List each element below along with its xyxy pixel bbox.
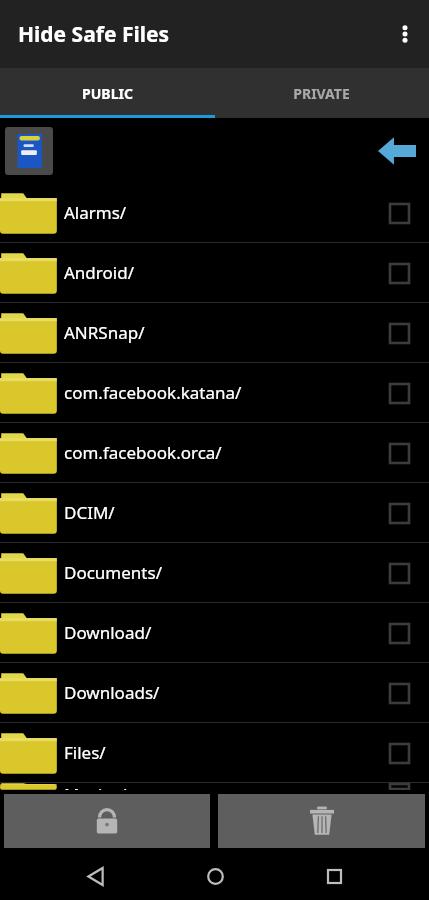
button[interactable]: PUBLIC [0, 68, 214, 118]
button[interactable]: Back [373, 127, 421, 175]
button[interactable]: Select Downloads/ [375, 669, 423, 717]
staticText: PUBLIC [82, 84, 133, 103]
button[interactable]: Documents/ [0, 543, 429, 602]
button[interactable]: Select DCIM/ [375, 489, 423, 537]
staticText: ANRSnap/ [64, 321, 375, 344]
button[interactable]: Delete selected [218, 794, 425, 848]
button[interactable]: Lock selected [4, 794, 210, 848]
staticText: Hide Safe Files [18, 20, 170, 49]
button[interactable]: Home [191, 852, 239, 900]
staticText: com.facebook.orca/ [64, 441, 375, 464]
button[interactable]: Select Alarms/ [375, 189, 423, 237]
button[interactable]: ANRSnap/ [0, 303, 429, 362]
staticText: Downloads/ [64, 681, 375, 704]
button[interactable]: Android/ [0, 243, 429, 302]
button[interactable]: DCIM/ [0, 483, 429, 542]
staticText: Android/ [64, 261, 375, 284]
button[interactable]: Select com.facebook.katana/ [375, 369, 423, 417]
staticText: DCIM/ [64, 501, 375, 524]
staticText: Download/ [64, 621, 375, 644]
button[interactable]: Select com.facebook.orca/ [375, 429, 423, 477]
button[interactable]: PRIVATE [214, 68, 429, 118]
staticText: PRIVATE [293, 84, 350, 103]
button[interactable]: More options [381, 0, 429, 68]
button[interactable]: Select Download/ [375, 609, 423, 657]
staticText: com.facebook.katana/ [64, 381, 375, 404]
button[interactable]: Recent apps [310, 852, 358, 900]
button[interactable]: Select Files/ [375, 729, 423, 777]
button[interactable]: Movies/ [0, 783, 429, 790]
button[interactable]: Back [71, 852, 119, 900]
staticText: Files/ [64, 741, 375, 764]
button[interactable]: Download/ [0, 603, 429, 662]
staticText: Documents/ [64, 561, 375, 584]
button[interactable]: Select Android/ [375, 249, 423, 297]
button[interactable]: Files/ [0, 723, 429, 782]
button[interactable]: Downloads/ [0, 663, 429, 722]
staticText: Movies/ [64, 783, 375, 790]
button[interactable]: com.facebook.katana/ [0, 363, 429, 422]
button[interactable]: com.facebook.orca/ [0, 423, 429, 482]
button[interactable]: Select Documents/ [375, 549, 423, 597]
button[interactable]: Select ANRSnap/ [375, 309, 423, 357]
staticText: Alarms/ [64, 201, 375, 224]
button[interactable]: SD card storage [5, 127, 53, 175]
button[interactable]: Alarms/ [0, 183, 429, 242]
button[interactable]: Select Movies/ [375, 783, 423, 790]
